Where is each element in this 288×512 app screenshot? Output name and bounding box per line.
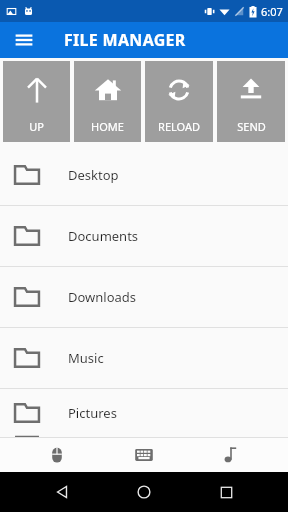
- button[interactable]: Documents: [0, 206, 288, 267]
- button[interactable]: RELOAD: [145, 61, 213, 142]
- staticText: 6:07: [261, 4, 283, 19]
- button[interactable]: Menu: [8, 24, 40, 56]
- staticText: RELOAD: [158, 119, 200, 134]
- staticText: HOME: [91, 119, 124, 134]
- staticText: UP: [29, 119, 44, 134]
- button[interactable]: Mouse: [27, 437, 87, 472]
- staticText: Downloads: [68, 288, 137, 306]
- button[interactable]: Music: [0, 328, 288, 389]
- button[interactable]: Home: [124, 472, 164, 512]
- button[interactable]: Desktop: [0, 145, 288, 206]
- button[interactable]: Recents: [206, 472, 246, 512]
- button[interactable]: Back: [42, 472, 82, 512]
- staticText: Pictures: [68, 404, 117, 422]
- staticText: Music: [68, 349, 104, 367]
- button[interactable]: UP: [3, 61, 70, 142]
- staticText: Desktop: [68, 166, 119, 184]
- button[interactable]: Music: [201, 437, 261, 472]
- button[interactable]: Downloads: [0, 267, 288, 328]
- staticText: FILE MANAGER: [64, 29, 186, 51]
- button[interactable]: Keyboard: [114, 437, 174, 472]
- button[interactable]: Pictures: [0, 389, 288, 437]
- staticText: SEND: [237, 119, 266, 134]
- button[interactable]: HOME: [74, 61, 141, 142]
- button[interactable]: SEND: [217, 61, 285, 142]
- staticText: Documents: [68, 227, 139, 245]
